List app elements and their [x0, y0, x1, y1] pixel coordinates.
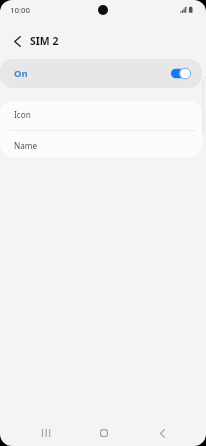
staticText: 10:00 [10, 5, 30, 16]
button[interactable]: Name [0, 131, 202, 157]
button[interactable]: Icon [0, 101, 202, 130]
button[interactable]: On [0, 59, 202, 88]
button[interactable]: Home [84, 423, 124, 443]
staticText: Icon [14, 109, 31, 120]
button[interactable]: Recent apps [26, 423, 66, 443]
button[interactable]: Back [142, 423, 182, 443]
staticText: SIM 2 [30, 34, 59, 48]
button[interactable]: Navigate up [9, 33, 26, 50]
staticText: On [14, 67, 28, 80]
staticText: Name [14, 140, 38, 151]
